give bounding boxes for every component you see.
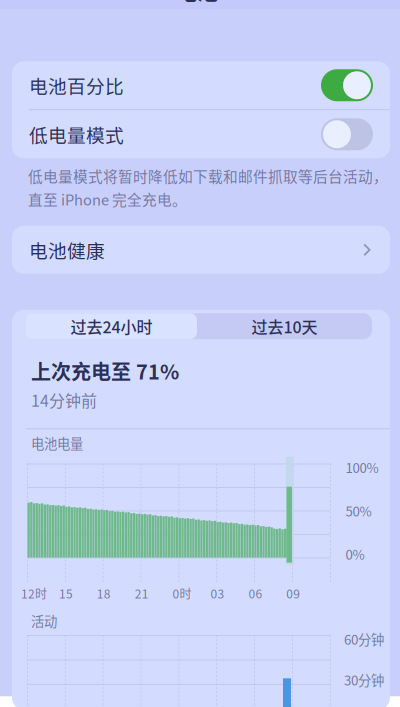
staticText: 14分钟前 xyxy=(31,388,97,411)
staticText: 0% xyxy=(345,544,364,564)
staticText: 06 xyxy=(248,585,262,602)
staticText: 50% xyxy=(345,501,371,520)
staticText: 低电量模式将暂时降低如下载和邮件抓取等后台活动， xyxy=(28,165,388,186)
staticText: 60分钟 xyxy=(344,629,384,649)
staticText: 15 xyxy=(59,585,73,602)
staticText: 09 xyxy=(286,585,300,602)
staticText: 电池健康 xyxy=(29,236,105,263)
button[interactable]: 电池健康 xyxy=(12,226,390,274)
staticText: 21 xyxy=(135,585,149,602)
button[interactable]: 低电量模式 xyxy=(12,110,390,158)
staticText: 100% xyxy=(345,458,378,477)
button[interactable]: 电池百分比 xyxy=(12,61,390,109)
staticText: 03 xyxy=(210,585,224,602)
staticText: 电池百分比 xyxy=(29,72,124,99)
staticText: 18 xyxy=(97,585,111,602)
staticText: 直至 iPhone 完全充电。 xyxy=(28,188,187,210)
staticText: 电池电量 xyxy=(31,433,83,453)
staticText: 过去10天 xyxy=(251,315,317,338)
staticText: 上次充电至 71% xyxy=(31,356,179,385)
staticText: 12时 xyxy=(21,585,47,602)
staticText: 电池 xyxy=(176,0,218,6)
staticText: 0时 xyxy=(173,585,192,602)
button[interactable]: 过去10天 xyxy=(197,313,372,339)
staticText: 低电量模式 xyxy=(29,121,124,148)
staticText: 过去24小时 xyxy=(70,315,152,338)
staticText: 30分钟 xyxy=(344,670,384,689)
button[interactable]: 过去24小时 xyxy=(26,313,197,339)
staticText: 活动 xyxy=(31,611,57,630)
